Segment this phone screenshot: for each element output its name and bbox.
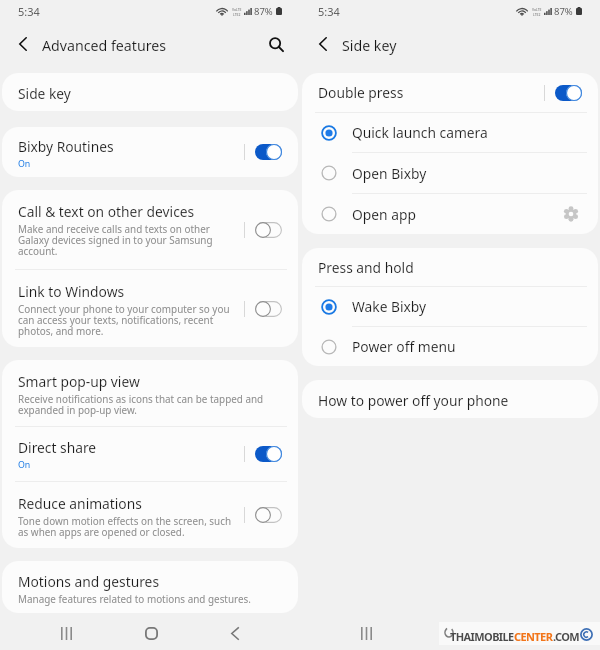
staticText: Reduce animations xyxy=(18,494,142,513)
staticText: VoLTE xyxy=(232,7,242,12)
button[interactable]: Home xyxy=(433,620,469,647)
staticText: On xyxy=(18,459,31,471)
staticText: How to power off your phone xyxy=(318,391,509,410)
button[interactable]: Quick launch camera xyxy=(302,113,598,152)
staticText: Connect your phone to your computer so y… xyxy=(18,302,238,338)
button[interactable]: Search xyxy=(256,32,294,66)
staticText: .COM xyxy=(553,629,580,644)
staticText: 87% xyxy=(254,5,273,18)
staticText: Bixby Routines xyxy=(18,137,114,156)
button[interactable]: Wake Bixby xyxy=(302,287,598,326)
button[interactable]: Direct share xyxy=(2,427,298,481)
staticText: Press and hold xyxy=(318,258,414,277)
staticText: CENTER xyxy=(514,629,553,644)
button[interactable]: Reduce animations xyxy=(2,482,298,548)
staticText: Call & text on other devices xyxy=(18,202,195,221)
staticText: 5:34 xyxy=(318,4,340,19)
button[interactable]: Home xyxy=(133,620,169,647)
button[interactable]: App settings xyxy=(559,202,583,226)
button[interactable]: Press and hold xyxy=(302,248,598,286)
staticText: Manage features related to motions and g… xyxy=(18,592,251,605)
staticText: Quick launch camera xyxy=(352,123,583,142)
button[interactable]: Double press xyxy=(302,73,598,112)
staticText: Side key xyxy=(342,36,397,55)
staticText: LTE2 xyxy=(533,12,541,17)
staticText: On xyxy=(18,158,31,170)
staticText: 5:34 xyxy=(18,4,40,19)
staticText: Tone down motion effects on the screen, … xyxy=(18,514,238,539)
staticText: Smart pop-up view xyxy=(18,372,140,391)
button[interactable]: Bixby Routines xyxy=(2,127,298,177)
staticText: THAIMOBILE xyxy=(450,629,514,644)
staticText: Direct share xyxy=(18,438,97,457)
staticText: VoLTE xyxy=(532,7,542,12)
staticText: LTE2 xyxy=(233,12,241,17)
button[interactable]: Navigate up xyxy=(305,32,343,66)
button[interactable]: Off xyxy=(250,190,286,269)
staticText: Double press xyxy=(318,83,404,102)
button[interactable]: Smart pop-up view xyxy=(2,360,298,426)
button[interactable]: Recent apps xyxy=(48,620,84,647)
button[interactable]: On xyxy=(550,73,586,112)
staticText: Make and receive calls and texts on othe… xyxy=(18,222,238,258)
button[interactable]: Side key xyxy=(2,73,298,111)
staticText: Advanced features xyxy=(42,36,167,55)
button[interactable]: Motions and gestures xyxy=(2,561,298,613)
staticText: Power off menu xyxy=(352,337,583,356)
button[interactable]: On xyxy=(250,427,286,481)
button[interactable]: Off xyxy=(250,482,286,548)
staticText: Open app xyxy=(352,205,559,224)
staticText: Side key xyxy=(18,84,71,103)
staticText: Receive notifications as icons that can … xyxy=(18,392,278,417)
button[interactable]: On xyxy=(250,127,286,177)
button[interactable]: Link to Windows xyxy=(2,270,298,347)
button[interactable]: Open app xyxy=(302,194,598,234)
button[interactable]: Call & text on other devices xyxy=(2,190,298,269)
staticText: Link to Windows xyxy=(18,282,125,301)
button[interactable]: Off xyxy=(250,270,286,347)
staticText: Motions and gestures xyxy=(18,572,160,591)
button[interactable]: Recent apps xyxy=(348,620,384,647)
button[interactable]: Power off menu xyxy=(302,327,598,366)
staticText: Open Bixby xyxy=(352,164,583,183)
button[interactable]: Open Bixby xyxy=(302,153,598,193)
button[interactable]: How to power off your phone xyxy=(302,380,598,418)
button[interactable]: Back xyxy=(517,620,553,647)
button[interactable]: Navigate up xyxy=(5,32,43,66)
staticText: 87% xyxy=(554,5,573,18)
staticText: Wake Bixby xyxy=(352,297,583,316)
button[interactable]: Back xyxy=(217,620,253,647)
